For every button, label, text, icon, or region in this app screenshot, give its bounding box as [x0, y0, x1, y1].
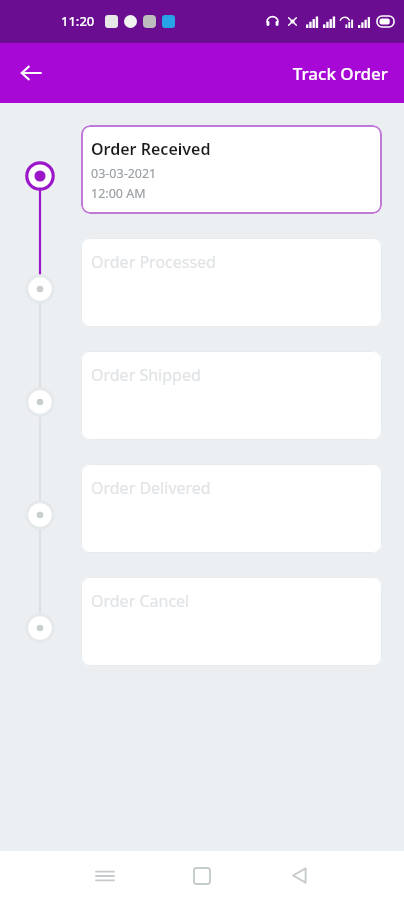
button[interactable]: Recent apps: [74, 851, 136, 900]
staticText: Order Received: [91, 138, 211, 160]
staticText: 03-03-2021: [91, 165, 157, 182]
staticText: 12:00 AM: [91, 185, 146, 202]
staticText: Order Delivered: [91, 477, 211, 499]
staticText: Order Processed: [91, 251, 216, 273]
button[interactable]: Order Delivered: [81, 464, 382, 553]
staticText: Track Order: [292, 62, 388, 85]
staticText: Order Shipped: [91, 364, 201, 386]
button[interactable]: Back: [268, 851, 330, 900]
button[interactable]: Order Processed: [81, 238, 382, 327]
button[interactable]: Home: [171, 851, 233, 900]
button[interactable]: Order Received: [81, 125, 382, 214]
button[interactable]: Order Cancel: [81, 577, 382, 666]
button[interactable]: Back: [10, 52, 52, 94]
staticText: 11:20: [61, 12, 95, 30]
staticText: Order Cancel: [91, 590, 190, 612]
button[interactable]: Order Shipped: [81, 351, 382, 440]
